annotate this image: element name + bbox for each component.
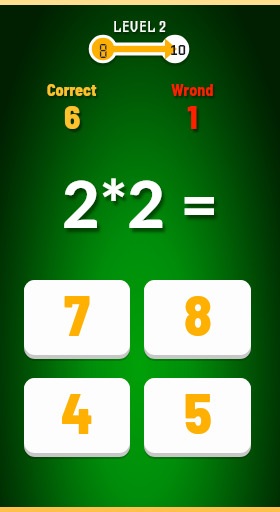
button[interactable]: 8 xyxy=(144,280,251,355)
staticText: LEVEL 2 xyxy=(113,18,167,36)
staticText: 8 xyxy=(98,42,109,59)
staticText: 7 xyxy=(64,280,90,347)
button[interactable]: 5 xyxy=(144,378,251,453)
staticText: 8 xyxy=(184,280,212,347)
staticText: 1 xyxy=(187,96,198,136)
button[interactable]: 7 xyxy=(24,280,130,355)
staticText: 5 xyxy=(184,378,212,445)
staticText: Correct xyxy=(47,80,97,99)
staticText: 2*2 = xyxy=(62,164,219,242)
staticText: 6 xyxy=(64,96,81,136)
button[interactable]: 4 xyxy=(24,378,130,453)
staticText: 10 xyxy=(170,41,187,60)
staticText: 4 xyxy=(61,378,93,445)
staticText: Wrond xyxy=(171,80,214,99)
